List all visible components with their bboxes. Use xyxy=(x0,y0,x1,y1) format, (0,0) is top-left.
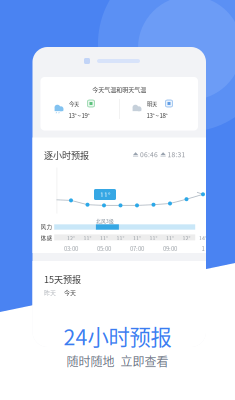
staticText: 13° ~ 19° xyxy=(68,111,89,120)
staticText: 今天 xyxy=(64,288,76,297)
staticText: 24小时预报 xyxy=(63,321,171,351)
staticText: 09:00 xyxy=(163,244,177,253)
staticText: 明天 xyxy=(147,100,157,108)
staticText: 11° xyxy=(133,234,141,242)
staticText: 风力 xyxy=(40,222,52,231)
staticText: 11° xyxy=(149,234,157,242)
staticText: 北风3级 xyxy=(96,217,114,224)
staticText: 14° xyxy=(199,234,207,242)
staticText: 15天预报 xyxy=(44,272,81,286)
staticText: 03:00 xyxy=(64,244,78,253)
staticText: 07:00 xyxy=(130,244,144,253)
staticText: 11° xyxy=(100,190,110,199)
staticText: 11° xyxy=(83,234,91,242)
staticText: 12° xyxy=(67,234,75,242)
staticText: 18:31 xyxy=(167,149,185,159)
staticText: 今天气温和明天气温 xyxy=(92,85,146,94)
staticText: 1 xyxy=(201,244,204,253)
staticText: 05:00 xyxy=(97,244,111,253)
staticText: 随时随地 立即查看 xyxy=(66,352,168,370)
staticText: 13° ~ 18° xyxy=(146,111,167,120)
staticText: 11° xyxy=(116,234,124,242)
staticText: 11° xyxy=(166,234,174,242)
staticText: 12° xyxy=(182,234,190,242)
staticText: 今天 xyxy=(69,100,79,108)
staticText: 11° xyxy=(100,234,108,242)
staticText: 体感 xyxy=(40,234,52,242)
staticText: 昨天 xyxy=(44,288,56,297)
staticText: 逐小时预报 xyxy=(44,148,89,162)
staticText: 06:46 xyxy=(140,149,158,159)
